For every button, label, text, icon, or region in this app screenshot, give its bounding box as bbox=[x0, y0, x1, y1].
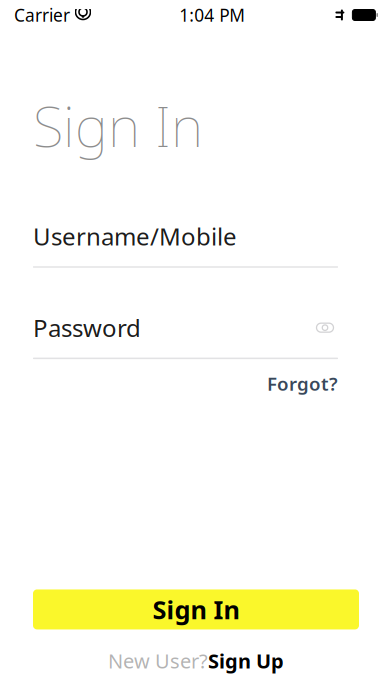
button[interactable]: New User? bbox=[108, 647, 284, 674]
staticText: Password bbox=[33, 312, 141, 344]
staticText: Carrier bbox=[14, 3, 70, 26]
staticText: Sign In bbox=[33, 88, 203, 162]
staticText: New User? bbox=[108, 647, 208, 674]
button[interactable]: Forgot? bbox=[267, 371, 338, 396]
staticText: Username/Mobile bbox=[33, 220, 237, 252]
staticText: Sign In bbox=[152, 593, 239, 626]
button[interactable]: Show password bbox=[312, 317, 338, 339]
staticText: Forgot? bbox=[267, 371, 338, 396]
button[interactable]: Sign In bbox=[33, 589, 359, 629]
staticText: Sign Up bbox=[208, 647, 284, 674]
staticText: 1:04 PM bbox=[179, 3, 245, 26]
